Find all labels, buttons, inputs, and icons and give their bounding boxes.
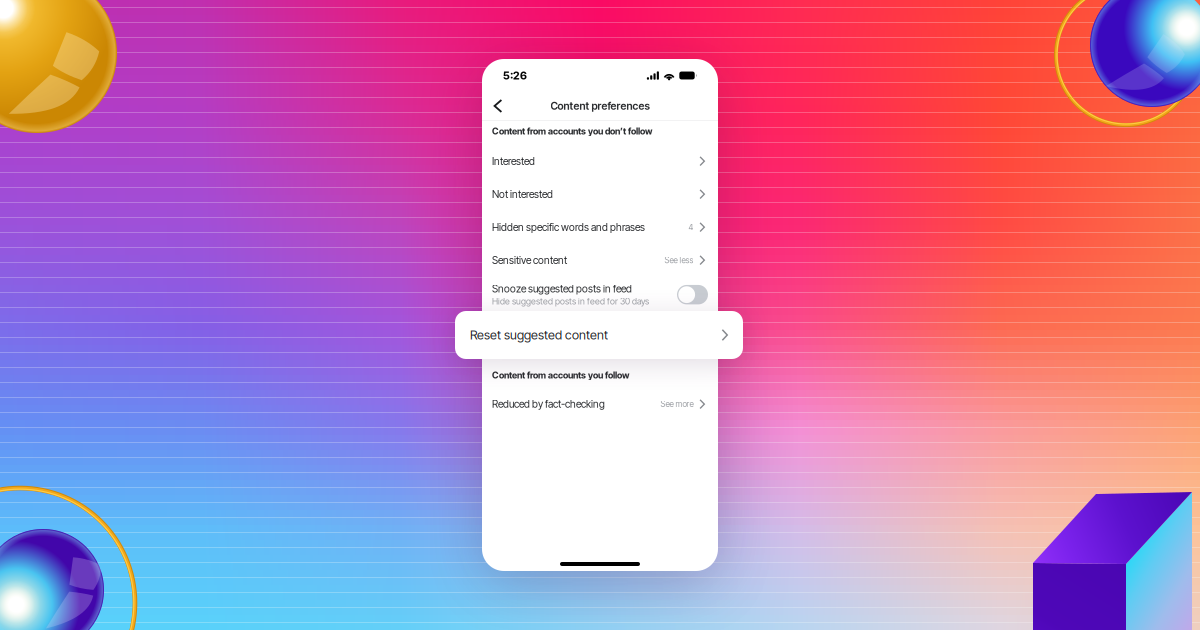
staticText: Sensitive content	[492, 254, 567, 266]
staticText: Reset suggested content	[470, 327, 608, 343]
staticText: Snooze suggested posts in feed	[492, 283, 632, 295]
staticText: 5:26	[503, 69, 527, 82]
staticText: See less	[664, 255, 693, 265]
staticText: See more	[660, 399, 693, 409]
staticText: Content preferences	[550, 100, 649, 112]
button[interactable]: Not interested	[482, 178, 718, 211]
staticText: Hidden specific words and phrases	[492, 221, 645, 233]
staticText: Content from accounts you follow	[492, 370, 629, 381]
button[interactable]: Reduced by fact-checking	[482, 388, 718, 421]
staticText: Interested	[492, 155, 535, 167]
button[interactable]: Interested	[482, 145, 718, 178]
staticText: Not interested	[492, 188, 553, 200]
button[interactable]: Hidden specific words and phrases	[482, 211, 718, 244]
staticText: Hide suggested posts in feed for 30 days	[492, 296, 649, 307]
button[interactable]: Sensitive content	[482, 244, 718, 277]
staticText: Reduced by fact-checking	[492, 398, 605, 410]
staticText: 4	[688, 222, 693, 232]
button[interactable]: Snooze suggested posts in feed	[482, 277, 718, 313]
staticText: Content from accounts you don’t follow	[492, 126, 652, 137]
button[interactable]: Reset suggested content	[455, 311, 743, 359]
button[interactable]: Back	[486, 94, 510, 118]
